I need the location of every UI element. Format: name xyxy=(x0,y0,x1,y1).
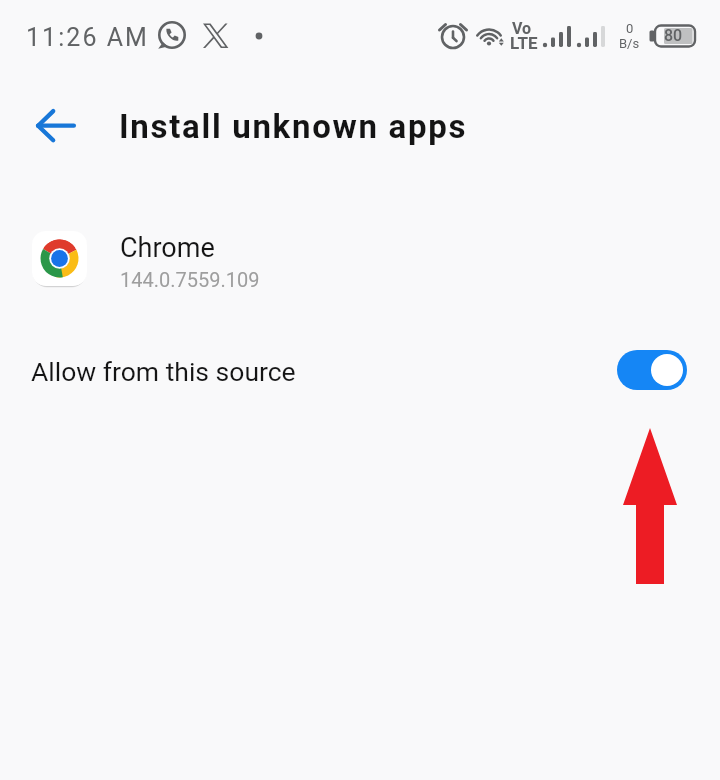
staticText: B/s xyxy=(619,36,640,51)
staticText: 144.0.7559.109 xyxy=(120,268,260,291)
button[interactable]: Allow from this source xyxy=(0,334,720,406)
staticText: Chrome xyxy=(120,232,215,264)
staticText: Install unknown apps xyxy=(119,107,468,146)
staticText: LTE xyxy=(510,33,538,53)
staticText: 0 xyxy=(626,21,634,36)
staticText: 80 xyxy=(664,26,683,45)
button[interactable]: Back xyxy=(28,98,84,154)
staticText: Allow from this source xyxy=(31,356,296,387)
button[interactable]: Allow from this source toggle xyxy=(617,350,687,390)
staticText: 11:26 AM xyxy=(26,23,149,52)
button[interactable]: Chrome xyxy=(0,216,720,306)
staticText: Vo xyxy=(512,19,532,38)
